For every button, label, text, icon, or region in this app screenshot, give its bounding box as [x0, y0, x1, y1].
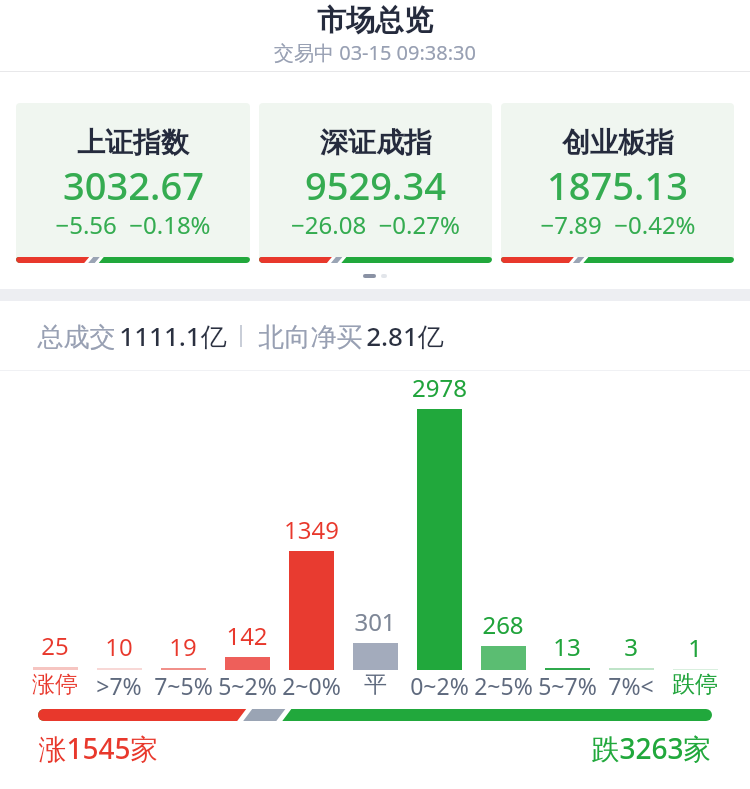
staticText: 142 [226, 619, 268, 652]
staticText: 5~2% [218, 670, 277, 701]
staticText: 19 [169, 630, 197, 663]
staticText: 2978 [412, 371, 467, 404]
staticText: 10 [105, 630, 133, 663]
staticText: 上证指数 [77, 125, 189, 160]
staticText: 25 [41, 629, 69, 662]
staticText: 0~2% [410, 670, 469, 701]
staticText: 13 [553, 630, 581, 663]
staticText: 北向净买 [255, 318, 366, 354]
staticText: 1111.1亿 [119, 318, 227, 354]
staticText: 跌停 [672, 670, 718, 699]
staticText: −7.89 −0.42% [540, 208, 696, 241]
staticText: 7~5% [154, 670, 213, 701]
staticText: −26.08 −0.27% [291, 208, 460, 241]
staticText: 涨停 [32, 670, 78, 699]
button[interactable]: 上证指数 [16, 103, 250, 263]
staticText: 5~7% [538, 670, 597, 701]
staticText: >7% [96, 670, 142, 701]
staticText: 3 [624, 630, 638, 663]
staticText: 1 [688, 631, 702, 664]
staticText: 1875.13 [547, 159, 688, 211]
staticText: 1349 [284, 513, 339, 546]
staticText: −5.56 −0.18% [55, 208, 211, 241]
staticText: 2~0% [282, 670, 341, 701]
button[interactable]: 深证成指 [259, 103, 492, 263]
staticText: 市场总览 [317, 2, 433, 39]
staticText: 总成交 [34, 318, 119, 354]
staticText: 3032.67 [63, 159, 204, 211]
staticText: 268 [482, 608, 524, 641]
staticText: 涨1545家 [38, 729, 159, 767]
staticText: 7%< [608, 670, 654, 701]
staticText: 301 [354, 605, 396, 638]
staticText: 2~5% [474, 670, 533, 701]
staticText: 深证成指 [320, 125, 432, 160]
button[interactable]: 创业板指 [501, 103, 734, 263]
staticText: 跌3263家 [591, 729, 712, 767]
staticText: 平 [364, 670, 387, 699]
staticText: 2.81亿 [366, 318, 444, 354]
staticText: 创业板指 [562, 125, 674, 160]
staticText: 9529.34 [305, 159, 446, 211]
staticText: 交易中 03-15 09:38:30 [274, 39, 476, 66]
